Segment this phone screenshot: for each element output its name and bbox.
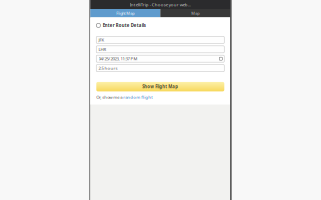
button[interactable]: random flight	[123, 94, 153, 100]
staticText: Flight Map	[116, 10, 134, 16]
staticText: Map	[191, 10, 199, 16]
button[interactable]: Show Flight Map	[96, 82, 224, 91]
staticText: IntelliTrip - Choose your web...	[130, 2, 191, 7]
staticText: Show Flight Map	[142, 84, 178, 90]
staticText: LHR	[98, 46, 106, 52]
staticText: random flight	[123, 94, 153, 100]
staticText: JFK	[98, 37, 104, 43]
staticText: Or, show me a	[96, 94, 123, 100]
staticText: 04/25/2023, 11:37 PM	[98, 56, 137, 62]
staticText: Enter Route Details	[103, 22, 146, 28]
staticText: 2.5 hours	[98, 65, 117, 71]
button[interactable]: Flight Map	[90, 9, 160, 17]
button[interactable]: Map	[160, 9, 230, 17]
